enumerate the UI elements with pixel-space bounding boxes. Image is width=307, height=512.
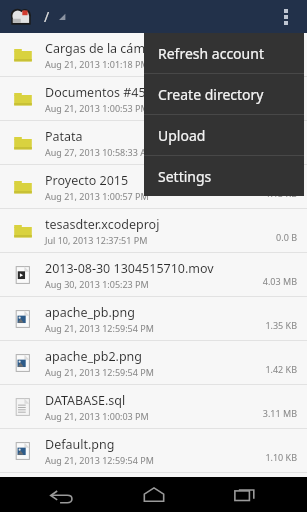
button[interactable]: tesasdter.xcodeproj (0, 209, 307, 253)
staticText: DATABASE.sql (45, 392, 126, 409)
button[interactable]: Account (8, 4, 34, 30)
button[interactable]: 2013-08-30 1304515710.mov (0, 253, 307, 297)
button[interactable]: Proyecto 2015 (0, 165, 307, 209)
button[interactable]: Refresh account (144, 33, 304, 73)
button[interactable]: Home (124, 477, 184, 512)
staticText: Aug 21, 2013 12:59:54 PM (45, 366, 154, 378)
button[interactable]: Recents (215, 477, 275, 512)
button[interactable]: Cargas de la cámara (0, 33, 307, 77)
staticText: Aug 21, 2013 1:00:53 PM (45, 102, 149, 114)
button[interactable]: apache_pb.png (0, 297, 307, 341)
staticText: 1.35 KB (265, 319, 297, 331)
staticText: 2013-08-30 1304515710.mov (45, 260, 214, 277)
staticText: Documentos #456 (45, 84, 153, 101)
button[interactable]: Settings (144, 156, 304, 196)
button[interactable]: DATABASE.sql (0, 385, 307, 429)
button[interactable]: Default.png (0, 429, 307, 473)
staticText: tesasdter.xcodeproj (45, 216, 160, 233)
staticText: Aug 27, 2013 10:58:33 AM (45, 146, 155, 158)
staticText: Create directory (158, 85, 264, 104)
staticText: 1.42 KB (265, 363, 297, 375)
staticText: Jul 10, 2013 12:37:51 PM (45, 234, 148, 246)
staticText: Aug 21, 2013 1:00:57 PM (45, 190, 149, 202)
staticText: / (44, 7, 50, 26)
staticText: Default.png (45, 436, 115, 453)
staticText: 4.03 MB (262, 275, 297, 287)
staticText: 1.10 KB (265, 451, 297, 463)
staticText: Aug 21, 2013 1:01:18 PM (45, 58, 149, 70)
staticText: Refresh account (158, 44, 264, 63)
staticText: Aug 21, 2013 12:59:54 PM (45, 322, 154, 334)
staticText: Patata (45, 128, 83, 145)
button[interactable]: Back (32, 477, 92, 512)
staticText: Settings (158, 167, 212, 186)
button[interactable]: Create directory (144, 74, 304, 114)
staticText: apache_pb2.png (45, 348, 143, 365)
staticText: Cargas de la cámara (45, 40, 165, 57)
button[interactable]: Documentos #456 (0, 77, 307, 121)
staticText: apache_pb.png (45, 304, 135, 321)
staticText: 3.11 MB (262, 407, 297, 419)
staticText: Aug 21, 2013 12:59:54 PM (45, 454, 154, 466)
button[interactable]: Patata (0, 121, 307, 165)
staticText: 0.0 B (276, 231, 297, 243)
staticText: Proyecto 2015 (45, 172, 129, 189)
staticText: Aug 21, 2013 1:00:03 PM (45, 410, 149, 422)
button[interactable]: Upload (144, 115, 304, 155)
staticText: 1.13 KB (265, 187, 297, 199)
button[interactable]: apache_pb2.png (0, 341, 307, 385)
staticText: Upload (158, 126, 206, 145)
button[interactable]: More options (273, 2, 299, 32)
staticText: Aug 30, 2013 1:05:23 PM (45, 278, 149, 290)
